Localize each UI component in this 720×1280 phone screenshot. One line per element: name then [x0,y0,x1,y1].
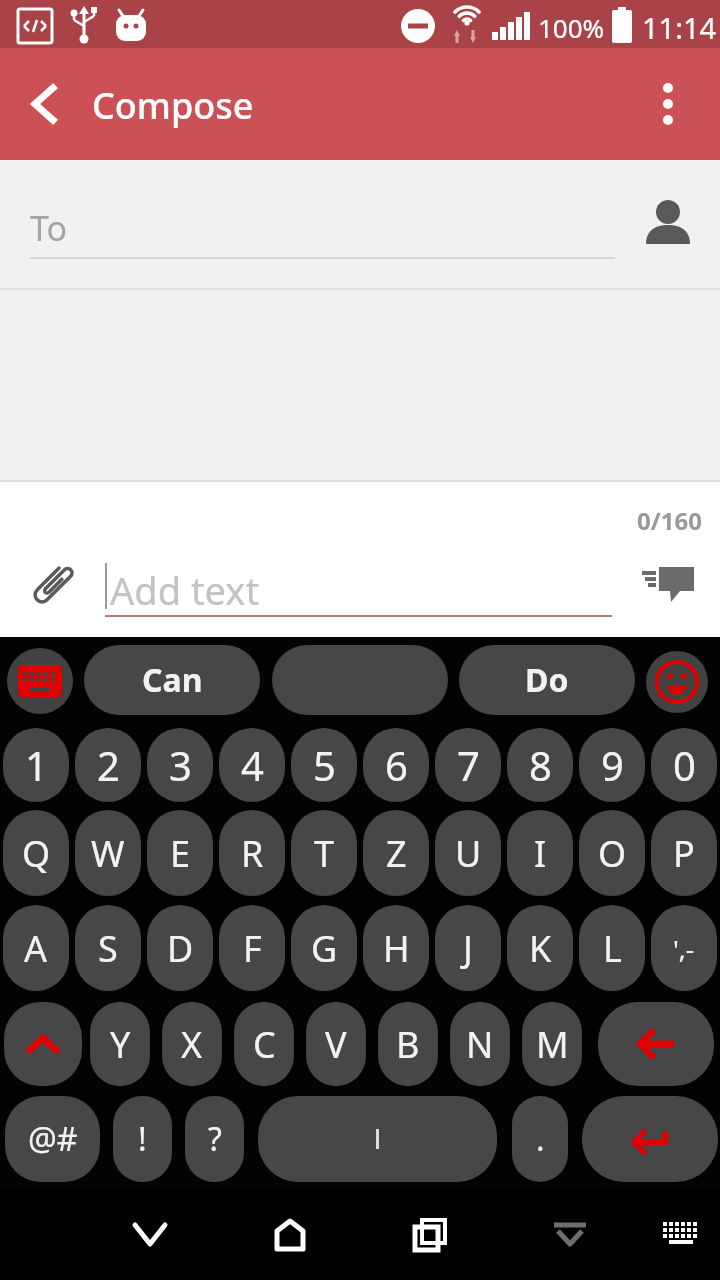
button[interactable] [4,1002,82,1086]
staticText: L [603,924,622,973]
staticText: K [529,924,552,973]
staticText: Y [110,1020,131,1069]
button[interactable]: 2 [75,728,141,802]
button[interactable] [22,555,82,615]
button[interactable]: 0 [651,728,717,802]
button[interactable]: Y [90,1002,150,1086]
button[interactable] [640,76,696,132]
staticText: 8 [529,738,552,792]
button[interactable] [598,1002,714,1086]
staticText: M [536,1020,569,1069]
button[interactable] [645,1200,717,1270]
staticText: R [241,829,264,878]
staticText: X [181,1020,203,1069]
button[interactable]: T [291,810,357,896]
staticText: C [253,1020,276,1069]
button[interactable]: ? [185,1096,244,1182]
button[interactable]: 5 [291,728,357,802]
button[interactable]: L [579,905,645,991]
button[interactable]: M [522,1002,582,1086]
staticText: P [673,829,695,878]
button[interactable]: K [507,905,573,991]
button[interactable]: Q [3,810,69,896]
staticText: O [598,829,627,878]
button[interactable] [646,651,708,713]
staticText: N [466,1020,494,1069]
button[interactable]: 6 [363,728,429,802]
staticText: T [314,829,335,878]
button[interactable]: . [512,1096,568,1182]
button[interactable]: R [219,810,285,896]
staticText: ! [138,1117,147,1161]
button[interactable] [630,184,706,260]
button[interactable]: C [234,1002,294,1086]
button[interactable]: Can [84,645,260,715]
staticText: G [311,924,338,973]
button[interactable] [114,1200,186,1270]
button[interactable]: ',- [651,905,717,991]
button[interactable] [582,1096,718,1182]
staticText: J [463,924,473,973]
button[interactable] [630,555,706,615]
button[interactable]: 8 [507,728,573,802]
staticText: Q [22,829,51,878]
button[interactable]: 4 [219,728,285,802]
button[interactable] [272,645,448,715]
staticText: V [325,1020,347,1069]
staticText: ',- [673,931,695,966]
staticText: W [91,829,125,878]
button[interactable]: @# [5,1096,100,1182]
button[interactable]: G [291,905,357,991]
button[interactable] [534,1200,606,1270]
staticText: F [243,924,262,973]
staticText: A [24,924,48,973]
staticText: Do [525,658,569,702]
button[interactable] [258,1096,497,1182]
button[interactable]: B [378,1002,438,1086]
button[interactable]: U [435,810,501,896]
staticText: 11:14 [642,8,717,47]
staticText: @# [28,1117,78,1161]
staticText: Z [386,829,407,878]
staticText: 0/160 [637,504,702,537]
button[interactable]: J [435,905,501,991]
button[interactable]: V [306,1002,366,1086]
button[interactable]: F [219,905,285,991]
button[interactable]: 9 [579,728,645,802]
staticText: 4 [241,738,264,792]
staticText: Can [142,658,203,702]
button[interactable]: X [162,1002,222,1086]
staticText: E [170,829,191,878]
staticText: 2 [97,738,120,792]
button[interactable]: 1 [3,728,69,802]
staticText: U [455,829,482,878]
staticText: H [383,924,410,973]
button[interactable]: Do [459,645,635,715]
button[interactable]: W [75,810,141,896]
button[interactable]: D [147,905,213,991]
button[interactable] [16,76,72,132]
button[interactable]: I [507,810,573,896]
staticText: 100% [538,10,605,45]
button[interactable]: O [579,810,645,896]
staticText: 9 [601,738,624,792]
staticText: 0 [673,738,696,792]
button[interactable]: Z [363,810,429,896]
staticText: Compose [92,81,254,130]
staticText: 7 [457,738,480,792]
staticText: ? [208,1117,222,1161]
button[interactable]: E [147,810,213,896]
button[interactable]: S [75,905,141,991]
button[interactable]: 3 [147,728,213,802]
button[interactable] [254,1200,326,1270]
button[interactable] [7,648,73,714]
button[interactable]: N [450,1002,510,1086]
button[interactable]: A [3,905,69,991]
staticText: 5 [313,738,336,792]
staticText: To [30,205,68,251]
button[interactable] [394,1200,466,1270]
button[interactable]: ! [113,1096,172,1182]
button[interactable]: H [363,905,429,991]
button[interactable]: P [651,810,717,896]
button[interactable]: 7 [435,728,501,802]
